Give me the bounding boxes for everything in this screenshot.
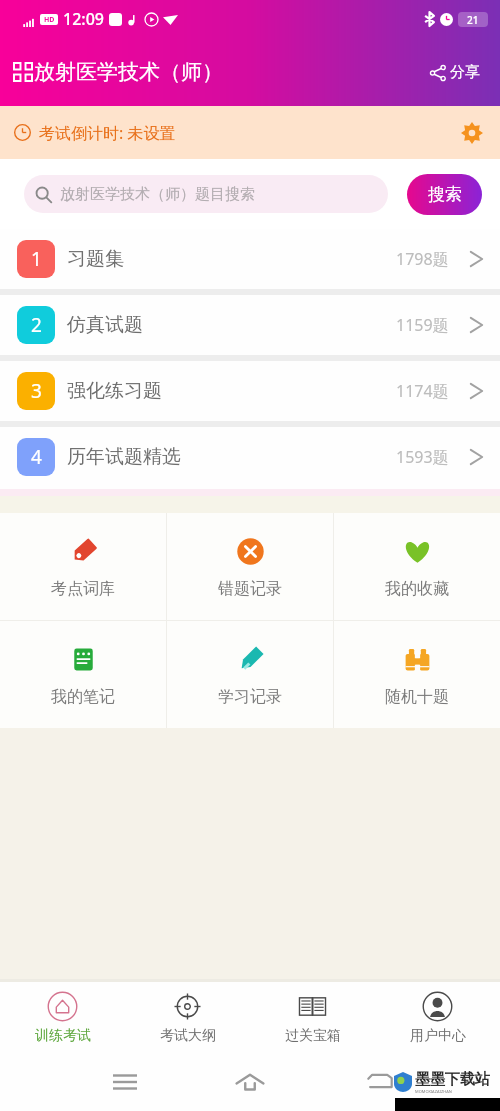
button[interactable]: 训练考试 xyxy=(0,982,125,1054)
button[interactable]: 考试大纲 xyxy=(125,982,250,1054)
staticText: 墨墨下载站 xyxy=(415,1070,490,1089)
staticText: 放射医学技术（师）题目搜索 xyxy=(60,185,255,204)
staticText: 21 xyxy=(467,13,479,27)
staticText: 放射医学技术（师） xyxy=(34,59,223,85)
staticText: 仿真试题 xyxy=(67,313,143,337)
staticText: 习题集 xyxy=(67,247,124,271)
staticText: 过关宝箱 xyxy=(285,1027,341,1045)
button[interactable]: 2 xyxy=(0,295,500,355)
button[interactable]: 1 xyxy=(0,229,500,289)
button[interactable]: Back xyxy=(360,1066,400,1098)
staticText: 考试大纲 xyxy=(160,1027,216,1045)
button[interactable]: 设置 xyxy=(458,119,486,147)
button[interactable]: Home xyxy=(230,1066,270,1098)
staticText: 我的笔记 xyxy=(51,687,115,707)
staticText: 强化练习题 xyxy=(67,379,162,403)
staticText: 2 xyxy=(31,312,42,338)
staticText: 1593题 xyxy=(396,446,449,468)
staticText: 我的收藏 xyxy=(385,579,449,599)
staticText: 考试倒计时: 未设置 xyxy=(39,122,176,144)
staticText: 搜索 xyxy=(428,184,462,205)
button[interactable]: 用户中心 xyxy=(375,982,500,1054)
staticText: 历年试题精选 xyxy=(67,445,181,469)
staticText: 3 xyxy=(31,378,42,404)
button[interactable]: 搜索 xyxy=(407,174,482,215)
button[interactable]: 学习记录 xyxy=(167,621,333,728)
staticText: 1159题 xyxy=(396,314,449,336)
button[interactable]: 考点词库 xyxy=(0,513,166,620)
button[interactable]: 分享 xyxy=(426,59,484,86)
staticText: 错题记录 xyxy=(218,579,282,599)
staticText: 随机十题 xyxy=(385,687,449,707)
button[interactable]: 放射医学技术（师）题目搜索 xyxy=(24,175,388,213)
staticText: HD xyxy=(44,15,55,25)
button[interactable]: 随机十题 xyxy=(334,621,500,728)
staticText: 学习记录 xyxy=(218,687,282,707)
staticText: 用户中心 xyxy=(410,1027,466,1045)
staticText: 1 xyxy=(31,246,42,272)
staticText: 分享 xyxy=(450,63,480,82)
staticText: 12:09 xyxy=(63,8,104,30)
staticText: 1174题 xyxy=(396,380,449,402)
staticText: 考点词库 xyxy=(51,579,115,599)
button[interactable]: 我的收藏 xyxy=(334,513,500,620)
staticText: 训练考试 xyxy=(35,1027,91,1045)
staticText: 1798题 xyxy=(396,248,449,270)
button[interactable]: 错题记录 xyxy=(167,513,333,620)
button[interactable]: 4 xyxy=(0,427,500,487)
staticText: MOMOXIAZAIZHAN xyxy=(415,1089,452,1094)
staticText: 4 xyxy=(31,444,42,470)
button[interactable]: 3 xyxy=(0,361,500,421)
button[interactable]: Recents xyxy=(105,1066,145,1098)
button[interactable]: 考试倒计时: 未设置 xyxy=(0,106,500,159)
button[interactable]: 我的笔记 xyxy=(0,621,166,728)
button[interactable]: 过关宝箱 xyxy=(250,982,375,1054)
